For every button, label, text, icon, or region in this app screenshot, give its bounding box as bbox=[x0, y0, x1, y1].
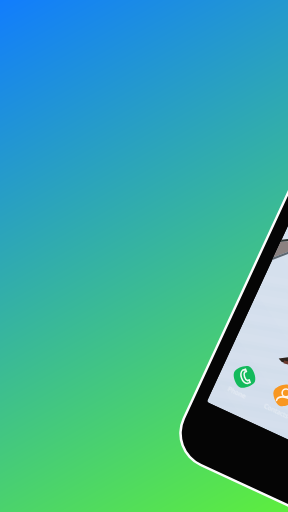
button[interactable]: Phone mockup showing the home screen bbox=[0, 0, 288, 512]
